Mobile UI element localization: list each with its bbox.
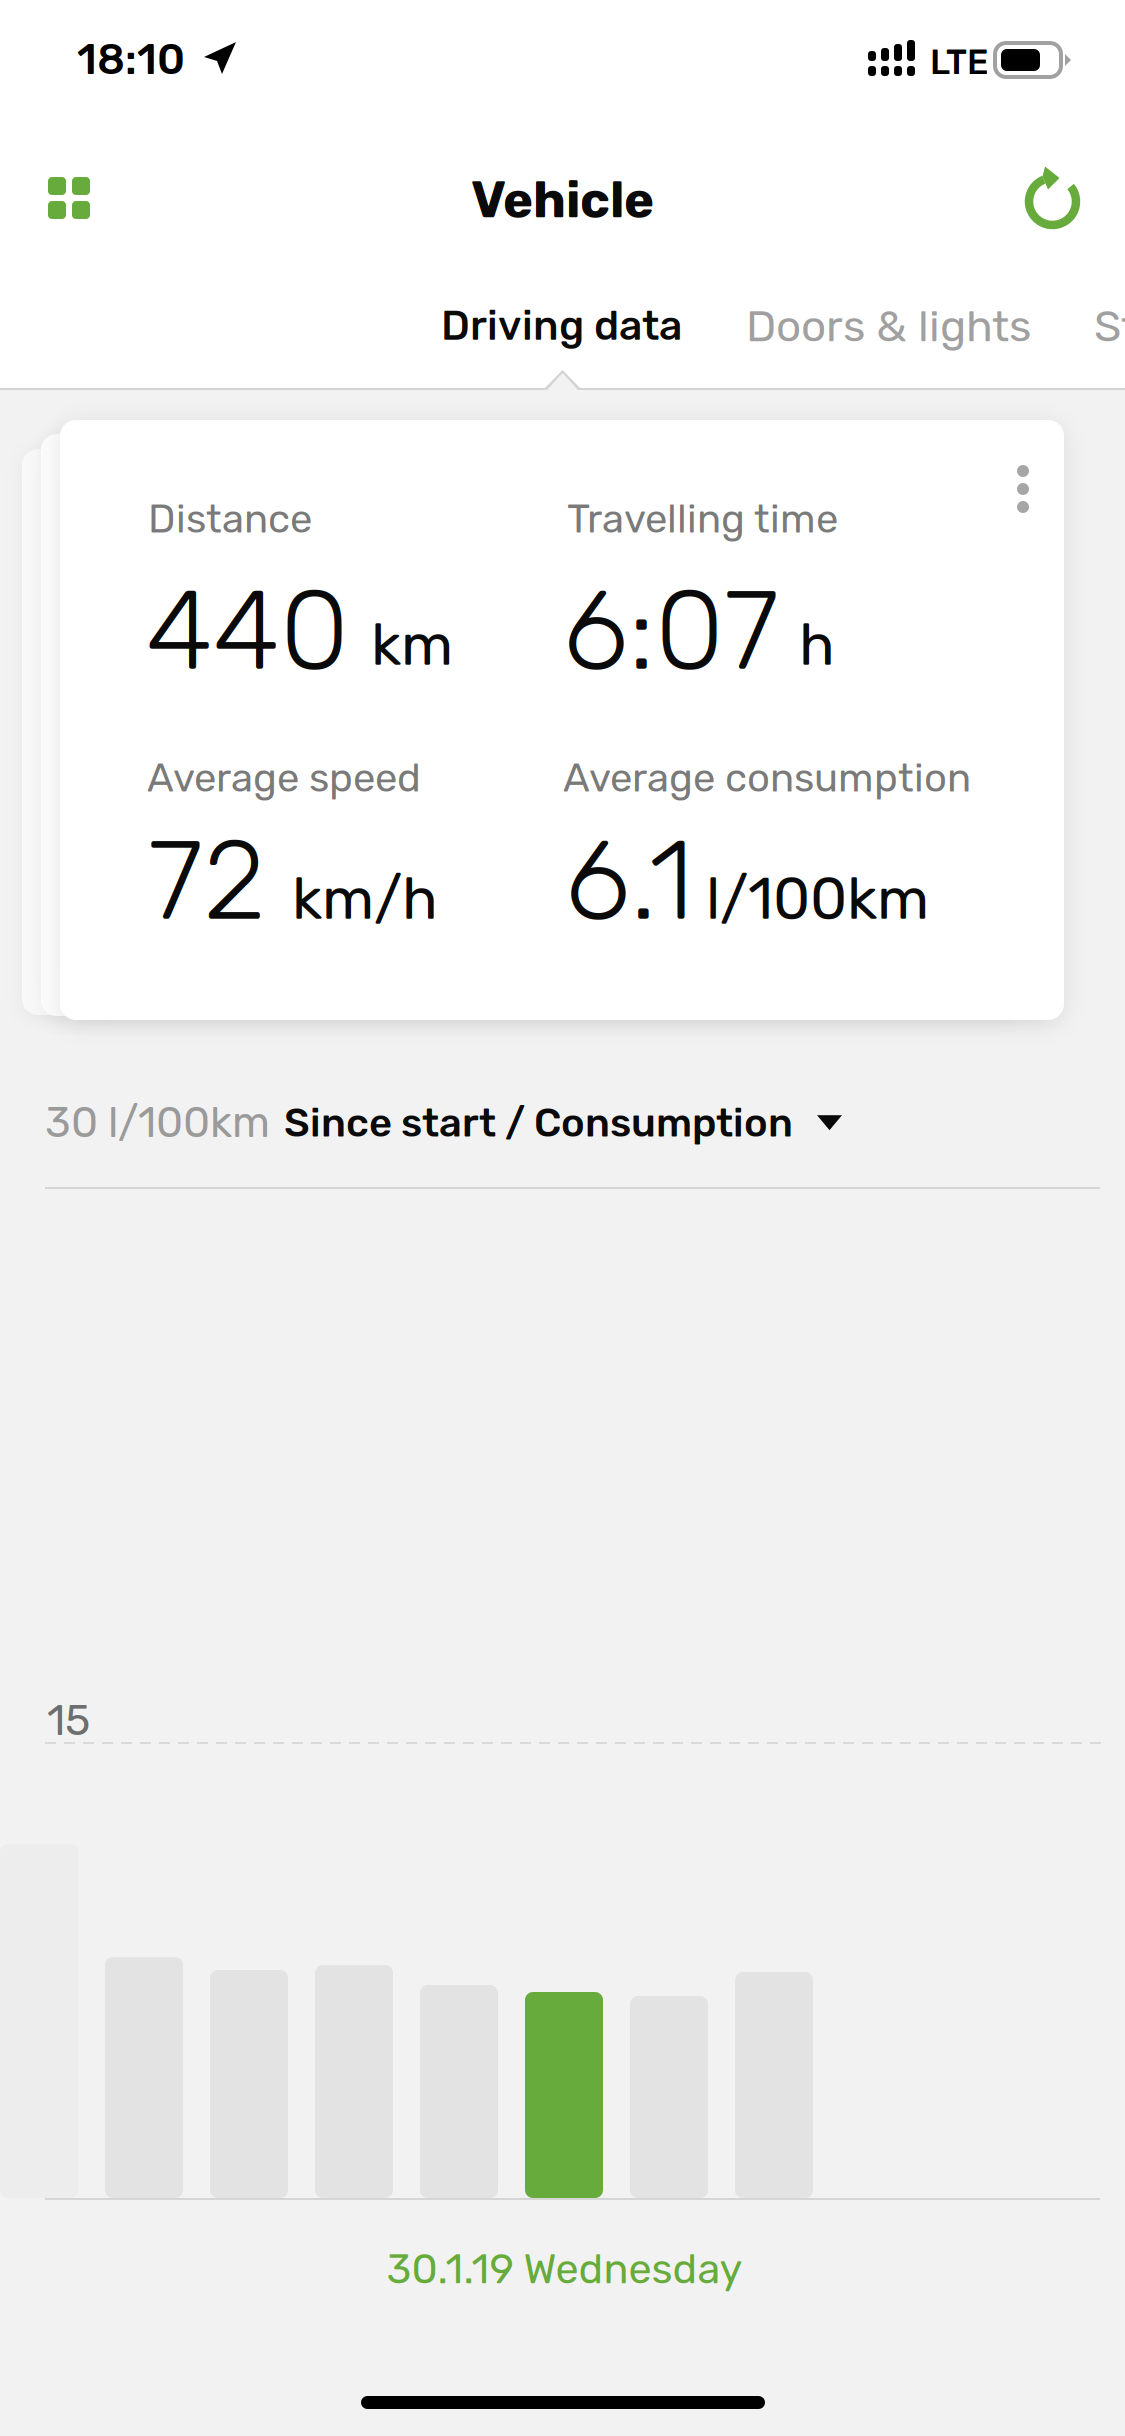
staticText: km [371, 610, 453, 679]
staticText: Doors & lights [746, 300, 1031, 352]
staticText: l/100km [706, 864, 929, 933]
button[interactable]: St [1078, 284, 1125, 368]
button[interactable]: Dashboard [20, 149, 118, 247]
staticText: 6.1 [565, 814, 694, 947]
staticText: Average consumption [563, 754, 971, 801]
staticText: LTE [930, 42, 989, 83]
staticText: 18:10 [77, 34, 185, 85]
staticText: Travelling time [567, 495, 838, 542]
button[interactable]: Refresh [998, 140, 1112, 262]
staticText: 72 [148, 814, 266, 947]
staticText: St [1094, 300, 1125, 352]
staticText: Distance [148, 495, 312, 542]
staticText: 30.1.19 Wednesday [386, 2244, 742, 2293]
staticText: 15 [47, 1695, 90, 1746]
staticText: km/h [292, 864, 438, 933]
staticText: Driving data [441, 301, 682, 350]
staticText: 6:07 [563, 564, 779, 697]
staticText: Vehicle [471, 170, 654, 230]
button[interactable]: More options [991, 439, 1055, 539]
button[interactable]: Since start / Consumption [272, 1087, 854, 1158]
button[interactable]: Driving data [425, 285, 698, 366]
staticText: 30 l/100km [45, 1097, 270, 1148]
staticText: Average speed [147, 754, 421, 801]
staticText: Since start / Consumption [284, 1099, 793, 1146]
staticText: 440 [146, 564, 349, 697]
button[interactable]: Doors & lights [730, 284, 1047, 368]
staticText: h [799, 610, 835, 679]
